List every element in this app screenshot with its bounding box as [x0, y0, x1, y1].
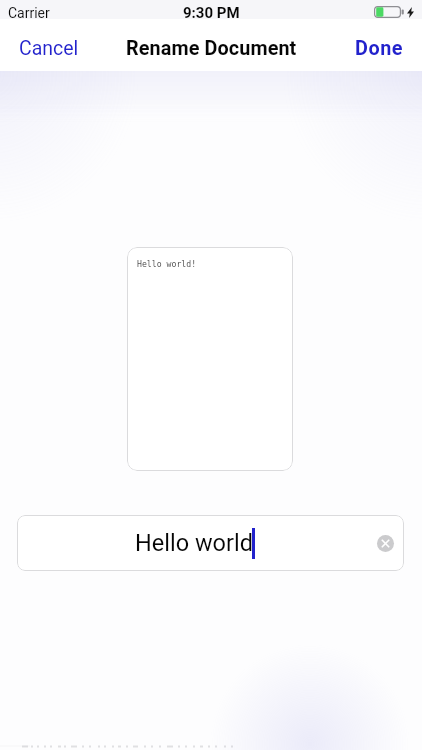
staticText: Hello world!: [137, 259, 197, 269]
staticText: Carrier: [8, 5, 50, 21]
staticText: 9:30 PM: [183, 4, 240, 22]
staticText: Hello world: [135, 529, 253, 557]
button[interactable]: Hello world: [17, 515, 404, 571]
other: Battery: [374, 6, 405, 18]
button[interactable]: Done: [347, 31, 412, 66]
button[interactable]: Clear text: [366, 524, 404, 562]
staticText: Done: [355, 37, 404, 60]
button[interactable]: Cancel: [11, 31, 87, 66]
staticText: Cancel: [19, 37, 79, 60]
other: Charging: [407, 7, 414, 18]
staticText: Rename Document: [126, 37, 297, 60]
button[interactable]: Hello world!: [127, 247, 293, 471]
